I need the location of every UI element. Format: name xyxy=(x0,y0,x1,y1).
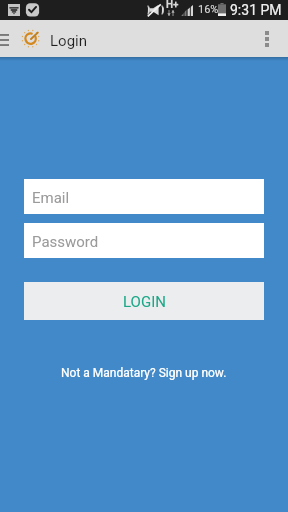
staticText: LOGIN xyxy=(123,293,166,311)
staticText: Login xyxy=(50,32,87,50)
staticText: H+ xyxy=(166,0,179,11)
button[interactable]: Navigation menu xyxy=(0,20,20,57)
button[interactable]: Not a Mandatary? Sign up now. xyxy=(53,363,235,383)
button[interactable]: Email xyxy=(24,179,264,214)
staticText: Not a Mandatary? Sign up now. xyxy=(61,366,227,380)
staticText: 9:31 PM xyxy=(230,2,282,18)
staticText: Password xyxy=(32,233,99,251)
button[interactable]: LOGIN xyxy=(24,282,264,320)
button[interactable]: Password xyxy=(24,223,264,258)
staticText: 16% xyxy=(198,3,219,16)
button[interactable]: More options xyxy=(256,20,277,57)
staticText: Email xyxy=(32,189,70,207)
